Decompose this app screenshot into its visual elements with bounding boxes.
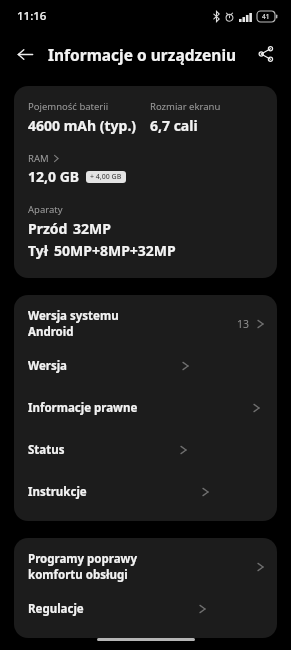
staticText: Informacje o urządzeniu [48, 44, 237, 65]
staticText: Wersja [28, 358, 67, 374]
button[interactable]: Programy poprawy komfortu obsługi [14, 546, 277, 588]
button[interactable]: Status [14, 429, 277, 471]
button[interactable]: Wersja systemu Android [14, 303, 277, 345]
staticText: 13 [236, 317, 249, 331]
staticText: + 4,00 GB [90, 172, 122, 182]
staticText: 12,0 GB [28, 167, 80, 186]
staticText: 6,7 cali [150, 116, 198, 135]
staticText: Pojemność baterii [28, 100, 109, 113]
staticText: Regulacje [28, 601, 84, 617]
button[interactable]: Regulacje [14, 588, 277, 630]
staticText: 41 [262, 12, 270, 21]
button[interactable]: Wstecz [8, 37, 42, 71]
staticText: 4600 mAh (typ.) [28, 116, 137, 135]
staticText: 11:16 [17, 8, 47, 24]
staticText: Informacje prawne [28, 400, 138, 416]
button[interactable]: Instrukcje [14, 471, 277, 513]
staticText: Aparaty [28, 203, 63, 216]
staticText: RAM [28, 152, 49, 165]
staticText: Status [28, 442, 65, 458]
staticText: Przód [28, 219, 68, 238]
button[interactable]: RAM [28, 152, 60, 165]
button[interactable]: Udostępnij [249, 37, 283, 71]
staticText: Rozmiar ekranu [150, 100, 221, 113]
staticText: 50MP+8MP+32MP [54, 241, 176, 260]
button[interactable]: Informacje prawne [14, 387, 277, 429]
button[interactable]: Wersja [14, 345, 277, 387]
staticText: Wersja systemu Android [28, 308, 132, 340]
staticText: Instrukcje [28, 484, 87, 500]
staticText: 32MP [73, 219, 111, 238]
staticText: Tył [28, 241, 49, 260]
staticText: Programy poprawy komfortu obsługi [28, 551, 142, 583]
